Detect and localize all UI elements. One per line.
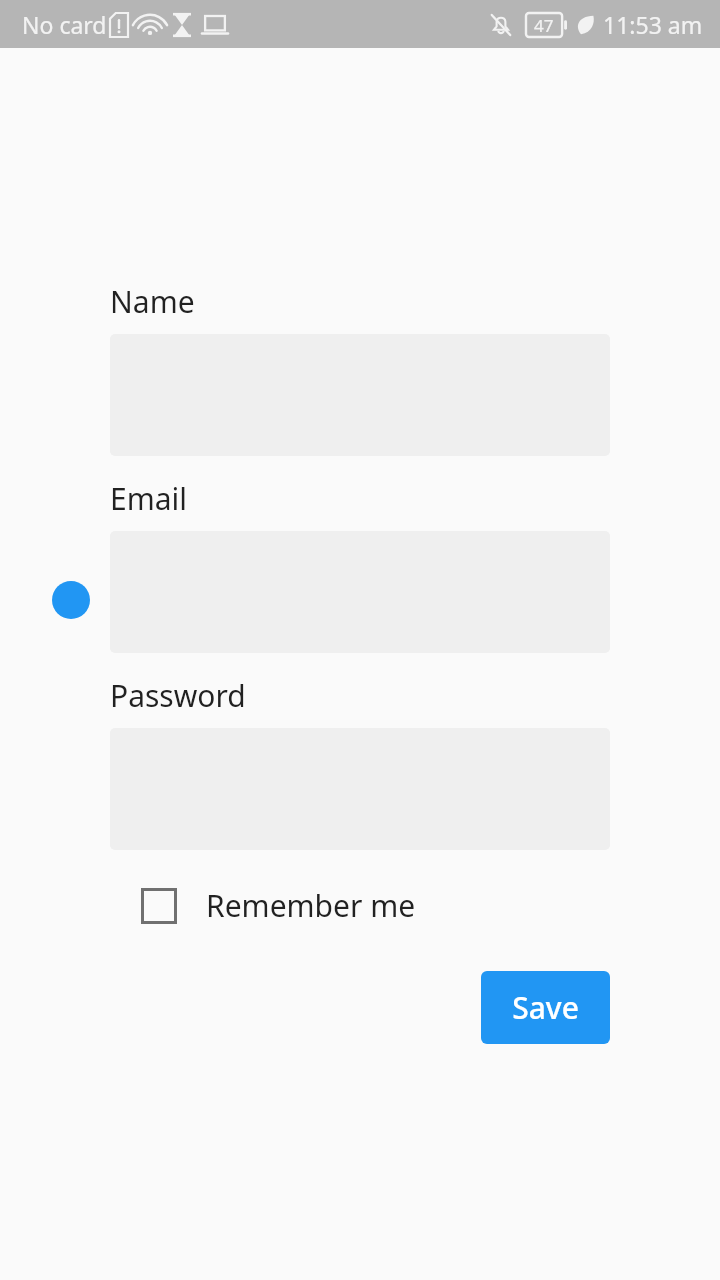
staticText: Save [512, 987, 579, 1028]
button[interactable]: Remember me [110, 881, 424, 930]
other: Status indicator [52, 581, 90, 619]
staticText: Name [110, 281, 195, 322]
staticText: 11:53 am [603, 9, 703, 40]
staticText: 47 [534, 14, 554, 37]
staticText: No card [22, 9, 107, 40]
staticText: Password [110, 675, 246, 716]
staticText: Email [110, 478, 188, 519]
button[interactable]: Save [481, 971, 610, 1044]
staticText: Remember me [206, 885, 416, 926]
